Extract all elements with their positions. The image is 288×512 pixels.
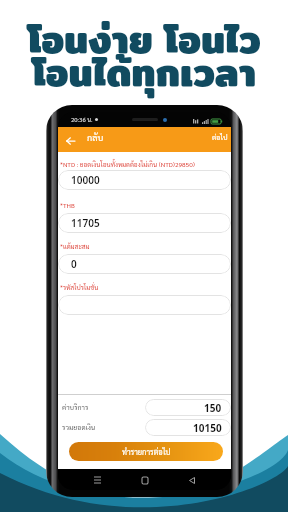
button[interactable]: กลับ [84,131,107,143]
staticText: ทำรายการต่อไป [122,447,171,457]
staticText: *NTD : ยอดเงินโอนทั้งหมดต้องไม่เกิน (NTD… [60,160,195,168]
staticText: โอนง่าย โอนไว [0,9,288,69]
button[interactable]: Home [137,472,153,488]
button[interactable]: Back [62,132,79,149]
staticText: *THB [60,201,75,209]
button[interactable]: Recent apps [89,472,105,488]
staticText: ค่าบริการ [62,403,89,412]
button[interactable] [58,295,231,315]
staticText: กลับ [87,131,104,143]
button[interactable]: 11705 [58,213,231,233]
button[interactable]: ต่อไป [209,133,231,142]
staticText: 0 [71,257,77,271]
staticText: รวมยอดเงิน [62,423,96,432]
staticText: 11705 [71,216,100,230]
staticText: *แต้มสะสม [60,242,90,250]
staticText: โอนได้ทุกเวลา [0,42,288,102]
button[interactable]: Back [184,472,200,488]
button[interactable]: ทำรายการต่อไป [69,442,223,461]
staticText: 10150 [193,421,222,435]
staticText: 10000 [71,173,100,187]
button[interactable]: 10000 [58,170,231,190]
staticText: ต่อไป [212,133,228,142]
staticText: 20:36 น. [71,116,93,124]
button[interactable]: 0 [58,254,231,274]
staticText: *รหัสโปรโมชั่น [60,283,99,291]
staticText: 150 [204,401,222,415]
